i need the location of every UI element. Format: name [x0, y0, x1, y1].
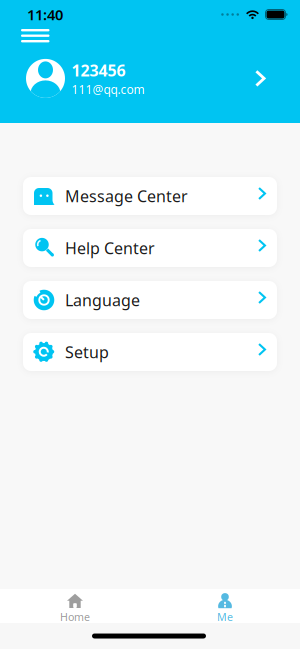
button[interactable]: Help Center: [23, 229, 277, 267]
button[interactable]: 123456: [0, 59, 300, 98]
staticText: 111@qq.com: [71, 81, 144, 97]
staticText: Home: [60, 610, 90, 624]
button[interactable]: Language: [23, 281, 277, 319]
button[interactable]: Me: [150, 589, 300, 623]
staticText: Me: [217, 610, 233, 624]
staticText: Language: [65, 289, 140, 311]
staticText: 123456: [71, 60, 125, 81]
button[interactable]: Menu: [21, 29, 49, 42]
button[interactable]: Home: [0, 589, 150, 623]
staticText: Help Center: [65, 237, 155, 259]
button[interactable]: Setup: [23, 333, 277, 371]
staticText: Setup: [65, 341, 109, 363]
staticText: 11:40: [27, 5, 63, 24]
button[interactable]: Message Center: [23, 177, 277, 215]
staticText: Message Center: [65, 185, 188, 207]
